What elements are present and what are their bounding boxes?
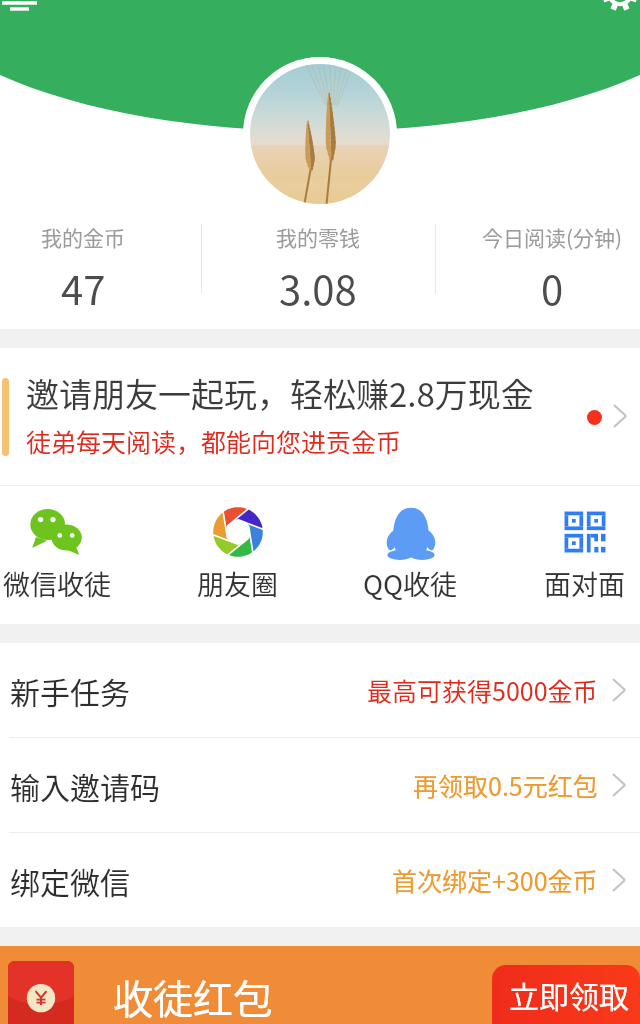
staticText: 微信收徒 (3, 564, 111, 603)
button[interactable]: Settings (596, 0, 640, 26)
button[interactable]: 新手任务 (0, 643, 640, 737)
staticText: 绑定微信 (10, 859, 130, 902)
button[interactable]: 我的零钱 (201, 210, 435, 329)
staticText: 输入邀请码 (10, 764, 160, 807)
staticText: 新手任务 (10, 669, 130, 712)
staticText: 我的金币 (41, 222, 125, 252)
button[interactable]: 我的金币 (0, 210, 200, 329)
staticText: 收徒红包 (113, 968, 273, 1024)
button[interactable]: QQ收徒 (363, 486, 458, 624)
button[interactable]: 朋友圈 (197, 486, 278, 624)
staticText: 徒弟每天阅读，都能向您进贡金币 (26, 423, 402, 459)
staticText: 今日阅读(分钟) (482, 222, 623, 252)
button[interactable]: Avatar (250, 64, 390, 204)
staticText: 立即领取 (509, 973, 629, 1016)
staticText: 0 (541, 259, 564, 317)
staticText: 我的零钱 (276, 222, 360, 252)
button[interactable]: 今日阅读(分钟) (435, 210, 640, 329)
staticText: QQ收徒 (363, 564, 458, 603)
button[interactable]: 输入邀请码 (0, 738, 640, 832)
button[interactable]: 绑定微信 (0, 833, 640, 927)
staticText: 首次绑定+300金币 (392, 862, 598, 898)
staticText: 再领取0.5元红包 (413, 767, 598, 803)
staticText: 面对面 (544, 564, 625, 603)
button[interactable]: 立即领取 (492, 965, 640, 1024)
button[interactable]: 微信收徒 (3, 486, 111, 624)
staticText: 最高可获得5000金币 (367, 672, 598, 708)
button[interactable]: 邀请朋友一起玩，轻松赚2.8万现金 (0, 348, 640, 485)
staticText: 朋友圈 (197, 564, 278, 603)
staticText: 47 (61, 259, 106, 317)
staticText: 邀请朋友一起玩，轻松赚2.8万现金 (26, 369, 534, 417)
button[interactable]: 面对面 (544, 486, 625, 624)
button[interactable]: Menu (0, 0, 44, 26)
staticText: 3.08 (279, 259, 357, 317)
